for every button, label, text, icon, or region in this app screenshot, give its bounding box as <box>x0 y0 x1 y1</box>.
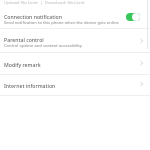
button[interactable]: Internet information <box>0 74 150 95</box>
staticText: Send notification to this phone when the… <box>4 20 119 26</box>
staticText: Upload: No Limit | Download: No Limit <box>4 0 85 5</box>
staticText: Parental control <box>4 36 44 43</box>
staticText: Control uptime and content accessibility <box>4 43 82 49</box>
button[interactable]: Connection notification toggle <box>126 13 140 21</box>
button[interactable]: Connection notification <box>0 8 150 29</box>
staticText: Internet information <box>4 82 56 89</box>
staticText: Connection notification <box>4 13 63 20</box>
staticText: Modify remark <box>4 61 41 68</box>
button[interactable]: Modify remark <box>0 53 150 74</box>
button[interactable]: Parental control <box>0 29 150 53</box>
